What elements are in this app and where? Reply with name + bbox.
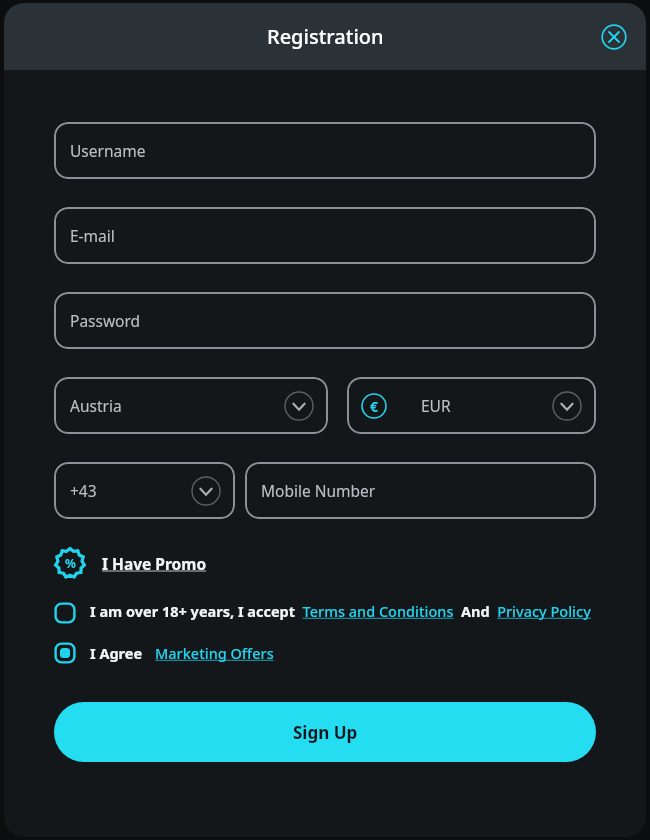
staticText: E-mail [70, 225, 115, 246]
button[interactable]: Open dropdown [191, 476, 221, 506]
button[interactable]: % [54, 545, 207, 581]
button[interactable]: Mobile Number [245, 462, 596, 519]
button[interactable]: I Agree [54, 642, 274, 664]
staticText: I Agree [90, 643, 143, 663]
staticText: Password [70, 310, 141, 331]
staticText: Marketing Offers [155, 643, 274, 663]
button[interactable]: Password [54, 292, 596, 349]
staticText: EUR [421, 395, 451, 416]
staticText: Sign Up [293, 721, 358, 744]
button[interactable]: Open dropdown [552, 391, 582, 421]
button[interactable]: Sign Up [54, 702, 596, 762]
button[interactable]: Username [54, 122, 596, 179]
button[interactable]: I am over 18+ years, I accept Terms and … [54, 601, 596, 624]
staticText: Registration [267, 23, 384, 50]
staticText: I Have Promo [102, 553, 207, 574]
button[interactable]: E-mail [54, 207, 596, 264]
button[interactable]: +43 [54, 462, 235, 519]
staticText: % [65, 555, 76, 571]
staticText: +43 [70, 480, 97, 501]
button[interactable]: Open dropdown [284, 391, 314, 421]
staticText: I am over 18+ years, I accept Terms and … [90, 601, 591, 621]
staticText: Mobile Number [261, 480, 376, 501]
staticText: Username [70, 140, 146, 161]
button[interactable]: Close [600, 23, 628, 51]
staticText: € [370, 397, 379, 416]
staticText: Austria [70, 395, 122, 416]
button[interactable]: Austria [54, 377, 328, 434]
button[interactable]: € [347, 377, 596, 434]
